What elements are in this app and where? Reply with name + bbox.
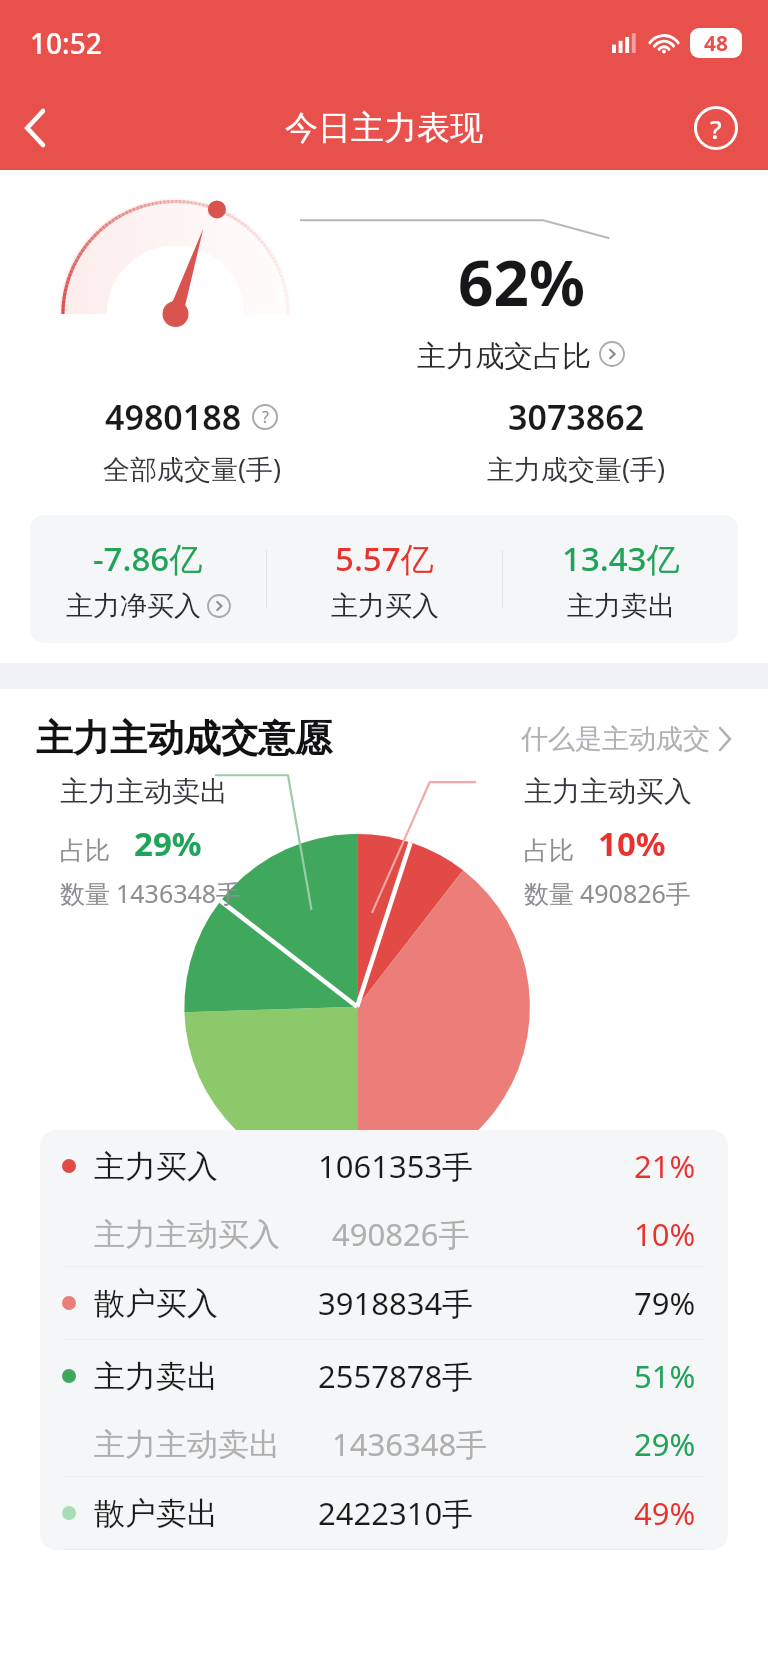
staticText: 10% [634, 1213, 696, 1255]
staticText: 主力主动卖出 [94, 1425, 280, 1464]
staticText: 2422310手 [318, 1492, 474, 1534]
staticText: 5.57亿 [335, 536, 434, 581]
staticText: 10% [598, 821, 666, 866]
button[interactable]: Help [684, 96, 748, 160]
staticText: 48 [704, 29, 729, 58]
staticText: 3073862 [508, 394, 645, 440]
staticText: 主力成交占比 [417, 338, 591, 370]
staticText: 1061353手 [318, 1145, 474, 1187]
staticText: 主力净买入 [66, 589, 201, 623]
staticText: 散户卖出 [94, 1494, 218, 1533]
button[interactable]: 主力买入 [40, 1130, 728, 1202]
staticText: 主力买入 [94, 1147, 218, 1186]
button[interactable]: 主力成交占比 [417, 338, 625, 370]
staticText: 主力主动买入 [94, 1215, 280, 1254]
button[interactable]: -7.86亿 [30, 536, 266, 623]
button[interactable]: 什么是主动成交 [521, 722, 732, 756]
staticText: 全部成交量(手) [103, 450, 282, 487]
staticText: 1436348手 [116, 876, 242, 910]
button[interactable]: Back [0, 92, 72, 164]
staticText: 4980188 [105, 394, 242, 440]
staticText: 主力主动买入 [524, 774, 692, 809]
staticText: 主力卖出 [567, 589, 675, 623]
staticText: 79% [634, 1282, 696, 1324]
staticText: 主力主动卖出 [60, 774, 228, 809]
button[interactable]: 散户卖出 [40, 1477, 728, 1549]
button[interactable]: Info [250, 402, 280, 432]
staticText: 21% [634, 1145, 696, 1187]
staticText: 29% [134, 821, 202, 866]
staticText: 数量 [524, 879, 574, 910]
staticText: 29% [634, 1423, 696, 1465]
staticText: ? [710, 111, 722, 146]
staticText: 13.43亿 [562, 536, 680, 581]
staticText: 49% [634, 1492, 696, 1534]
staticText: 主力成交量(手) [487, 450, 666, 487]
staticText: 51% [634, 1355, 696, 1397]
button[interactable]: 散户买入 [40, 1267, 728, 1339]
staticText: 1436348手 [332, 1423, 488, 1465]
staticText: 490826手 [580, 876, 691, 910]
staticText: 什么是主动成交 [521, 722, 710, 756]
staticText: -7.86亿 [93, 536, 203, 581]
staticText: 主力卖出 [94, 1357, 218, 1396]
staticText: 主力买入 [331, 589, 439, 623]
staticText: 主力主动成交意愿 [36, 715, 332, 762]
staticText: 62% [458, 240, 585, 324]
staticText: 散户买入 [94, 1284, 218, 1323]
staticText: 数量 [60, 879, 110, 910]
staticText: ? [262, 406, 269, 428]
staticText: 3918834手 [318, 1282, 474, 1324]
staticText: 490826手 [332, 1213, 470, 1255]
staticText: 今日主力表现 [285, 107, 483, 149]
staticText: 占比 [524, 835, 574, 866]
staticText: 占比 [60, 835, 110, 866]
button[interactable]: 主力卖出 [40, 1340, 728, 1412]
staticText: 10:52 [30, 24, 102, 62]
staticText: 2557878手 [318, 1355, 474, 1397]
